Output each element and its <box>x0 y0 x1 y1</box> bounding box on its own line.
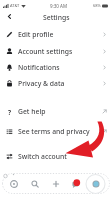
button[interactable]: Switch account <box>0 148 112 164</box>
button[interactable]: Edit profile <box>0 26 112 42</box>
button[interactable]: Home <box>6 176 22 192</box>
staticText: Account settings <box>18 47 73 56</box>
button[interactable]: Account settings <box>0 43 112 59</box>
staticText: 9:30 AM <box>50 3 68 9</box>
staticText: Privacy & data <box>18 79 65 88</box>
button[interactable]: Profile <box>88 176 104 192</box>
staticText: Notifications <box>18 63 60 72</box>
staticText: Switch account <box>18 152 67 161</box>
button[interactable]: Create <box>48 176 64 192</box>
staticText: Edit profile <box>18 30 54 39</box>
staticText: ? <box>8 108 12 115</box>
staticText: See terms and privacy <box>18 127 90 136</box>
button[interactable]: Activity <box>68 176 84 192</box>
button[interactable]: ? <box>0 103 112 119</box>
button[interactable]: Search <box>27 176 43 192</box>
staticText: Get help <box>18 107 46 116</box>
button[interactable]: Back <box>4 11 15 22</box>
staticText: Settings <box>43 13 70 22</box>
button[interactable]: See terms and privacy <box>0 123 112 139</box>
button[interactable]: Privacy & data <box>0 75 112 91</box>
staticText: 68% <box>93 3 101 8</box>
staticText: AT&T <box>10 3 20 8</box>
button[interactable]: Notifications <box>0 59 112 75</box>
